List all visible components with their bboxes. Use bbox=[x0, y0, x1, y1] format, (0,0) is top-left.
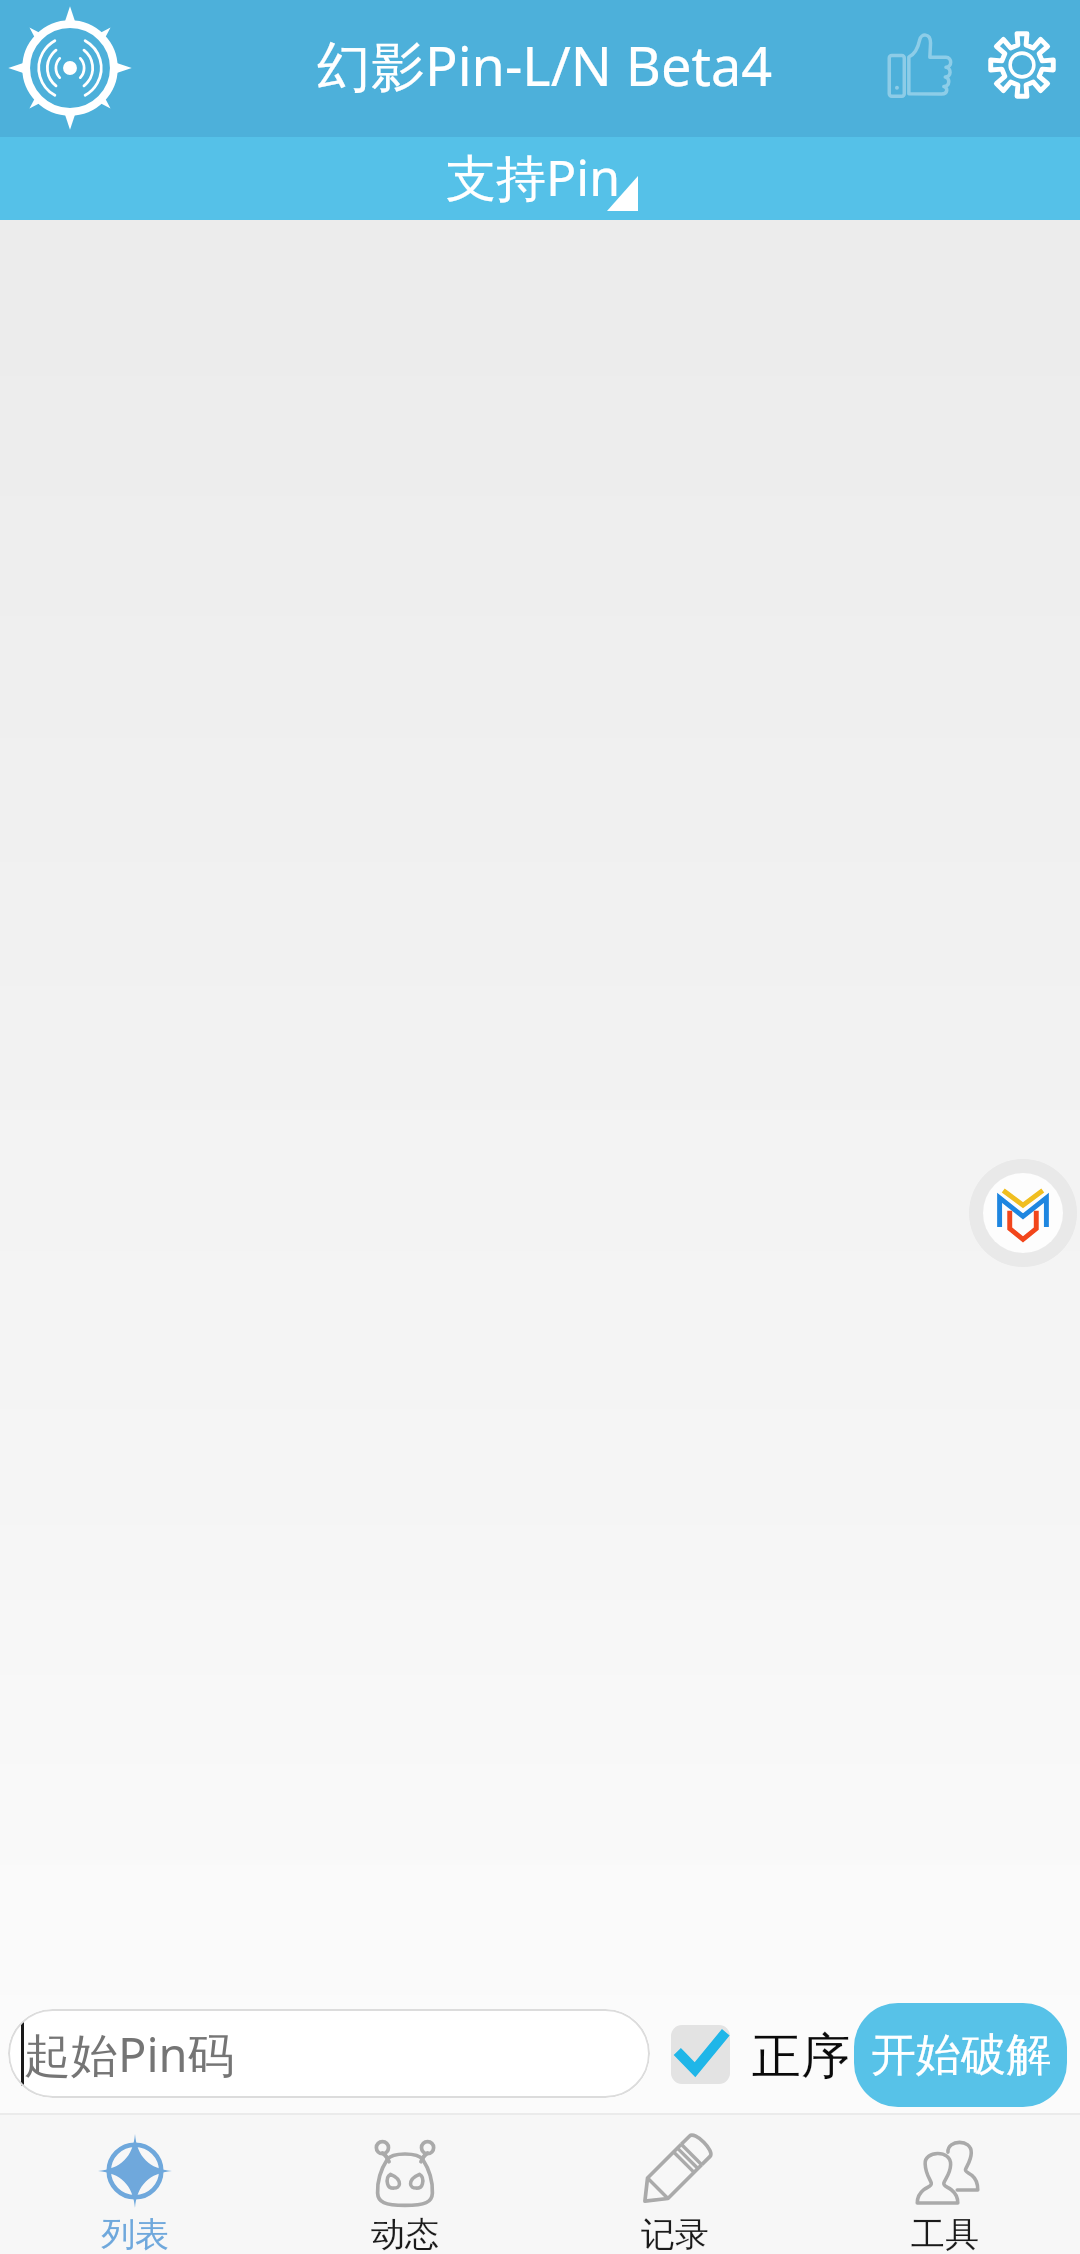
staticText: 动态 bbox=[371, 2213, 439, 2254]
button[interactable]: 正序 bbox=[752, 2012, 850, 2101]
button[interactable]: Ascending order checkbox bbox=[671, 2025, 730, 2084]
button[interactable]: 支持Pin bbox=[0, 137, 1080, 220]
button[interactable]: 起始Pin码 bbox=[8, 2009, 650, 2098]
button[interactable]: 列表 bbox=[0, 2113, 270, 2254]
button[interactable]: Settings bbox=[972, 15, 1072, 115]
button[interactable]: Like bbox=[869, 14, 969, 114]
button[interactable]: 工具 bbox=[810, 2113, 1080, 2254]
staticText: 列表 bbox=[101, 2213, 169, 2254]
button[interactable]: App logo bbox=[4, 2, 136, 134]
staticText: 开始破解 bbox=[871, 2027, 1051, 2084]
button[interactable]: 动态 bbox=[270, 2113, 540, 2254]
staticText: 工具 bbox=[911, 2213, 979, 2254]
staticText: 起始Pin码 bbox=[24, 2022, 235, 2086]
staticText: 支持Pin bbox=[446, 143, 621, 211]
button[interactable]: MobTech logo bbox=[969, 1159, 1077, 1267]
staticText: 幻影Pin-L/N Beta4 bbox=[317, 28, 773, 102]
staticText: 记录 bbox=[641, 2213, 709, 2254]
button[interactable]: 记录 bbox=[540, 2113, 810, 2254]
button[interactable]: 开始破解 bbox=[854, 2003, 1067, 2107]
staticText: 正序 bbox=[752, 2026, 850, 2088]
